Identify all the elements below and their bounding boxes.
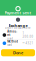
staticText: 1 200.00 — [22, 31, 33, 39]
staticText: order details here — [5, 26, 31, 30]
button[interactable]: Amount — [1, 31, 35, 39]
staticText: card — [7, 43, 12, 47]
button[interactable]: Method — [1, 39, 35, 47]
staticText: Amount — [7, 30, 17, 37]
button[interactable]: Done — [1, 49, 35, 56]
staticText: paid — [7, 37, 13, 40]
staticText: Payment sent — [4, 10, 31, 15]
staticText: Done — [13, 50, 23, 55]
staticText: •• 4321 — [22, 41, 33, 45]
staticText: Exchange — [8, 23, 27, 28]
staticText: Method — [7, 40, 18, 43]
